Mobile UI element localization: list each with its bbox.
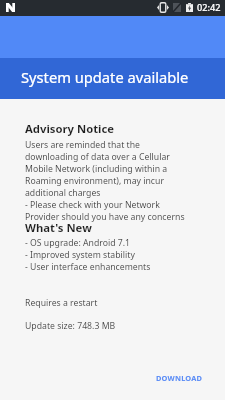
staticText: Users are reminded that the downloading … <box>25 139 185 223</box>
staticText: - OS upgrade: Android 7.1 - Improved sys… <box>25 237 151 273</box>
staticText: 02:42 <box>197 1 221 14</box>
staticText: Update size: 748.3 MB <box>25 320 116 332</box>
staticText: DOWNLOAD <box>156 373 203 383</box>
staticText: System update available <box>21 67 189 87</box>
staticText: Requires a restart <box>25 297 98 309</box>
button[interactable]: DOWNLOAD <box>148 364 211 392</box>
staticText: Advisory Notice <box>25 121 115 136</box>
staticText: What's New <box>25 220 92 235</box>
